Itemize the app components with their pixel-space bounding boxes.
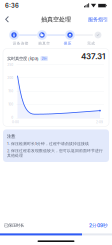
staticText: 2. 保压过程若发现数值较大，您可以返回前面环节进行其他处理 bbox=[7, 148, 103, 158]
staticText: 200 bbox=[7, 76, 13, 80]
staticText: 服务指引 bbox=[88, 16, 108, 23]
staticText: 已保压时长 bbox=[4, 223, 24, 228]
staticText: 1. 保压检测时长5分钟，过程中请勿拔掉连接线 bbox=[7, 141, 89, 146]
staticText: 250 bbox=[7, 63, 13, 67]
button[interactable]: Back bbox=[0, 13, 14, 26]
staticText: 2:09 bbox=[96, 120, 103, 124]
staticText: 2分09秒 bbox=[89, 222, 108, 228]
staticText: 6:36 bbox=[5, 2, 19, 9]
staticText: 完成 bbox=[87, 41, 95, 45]
staticText: 抽真空 bbox=[38, 41, 50, 45]
staticText: 注意 bbox=[7, 133, 15, 139]
staticText: 100 bbox=[8, 103, 13, 106]
staticText: 437.31 bbox=[81, 51, 105, 61]
staticText: 2分 bbox=[42, 56, 47, 60]
staticText: 0 bbox=[11, 116, 13, 119]
button[interactable]: 服务指引 bbox=[84, 13, 112, 26]
staticText: 实时真空度 (kpa) bbox=[7, 56, 39, 61]
staticText: 0:00 bbox=[12, 120, 19, 124]
button[interactable]: 2分 bbox=[40, 56, 48, 61]
staticText: 设备连接 bbox=[13, 41, 29, 45]
staticText: 150 bbox=[8, 89, 13, 93]
staticText: 保压 bbox=[64, 41, 72, 45]
staticText: 抽真空处理 bbox=[41, 16, 71, 23]
